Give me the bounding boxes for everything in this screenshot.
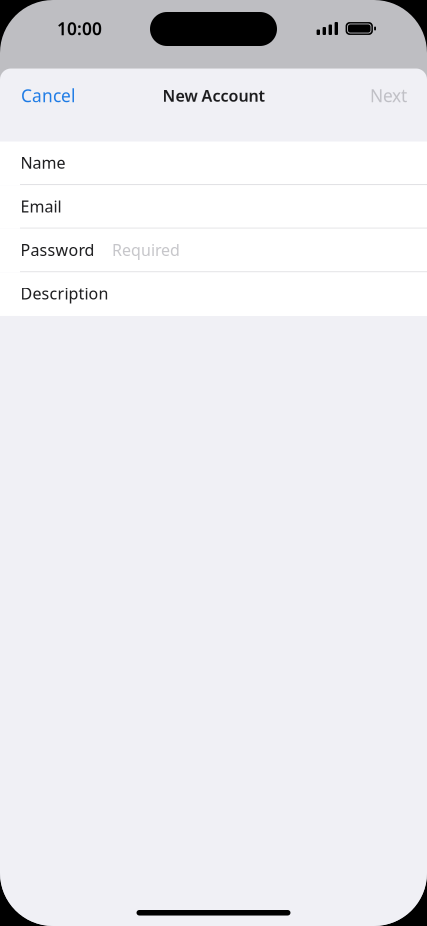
staticText: 10:00 [57,17,102,40]
staticText: Password [20,239,94,260]
staticText: Next [370,84,407,107]
button[interactable]: Password [0,229,427,272]
staticText: Name [20,152,65,173]
button[interactable]: Name [0,141,427,185]
staticText: Required [112,239,180,260]
button[interactable]: Description [0,272,427,316]
staticText: Email [20,196,61,217]
staticText: New Account [162,85,264,106]
button[interactable]: Email [0,185,427,229]
staticText: Cancel [21,84,75,107]
button[interactable]: Cancel [0,77,89,113]
staticText: Description [20,283,108,304]
button[interactable]: Next [356,77,427,113]
